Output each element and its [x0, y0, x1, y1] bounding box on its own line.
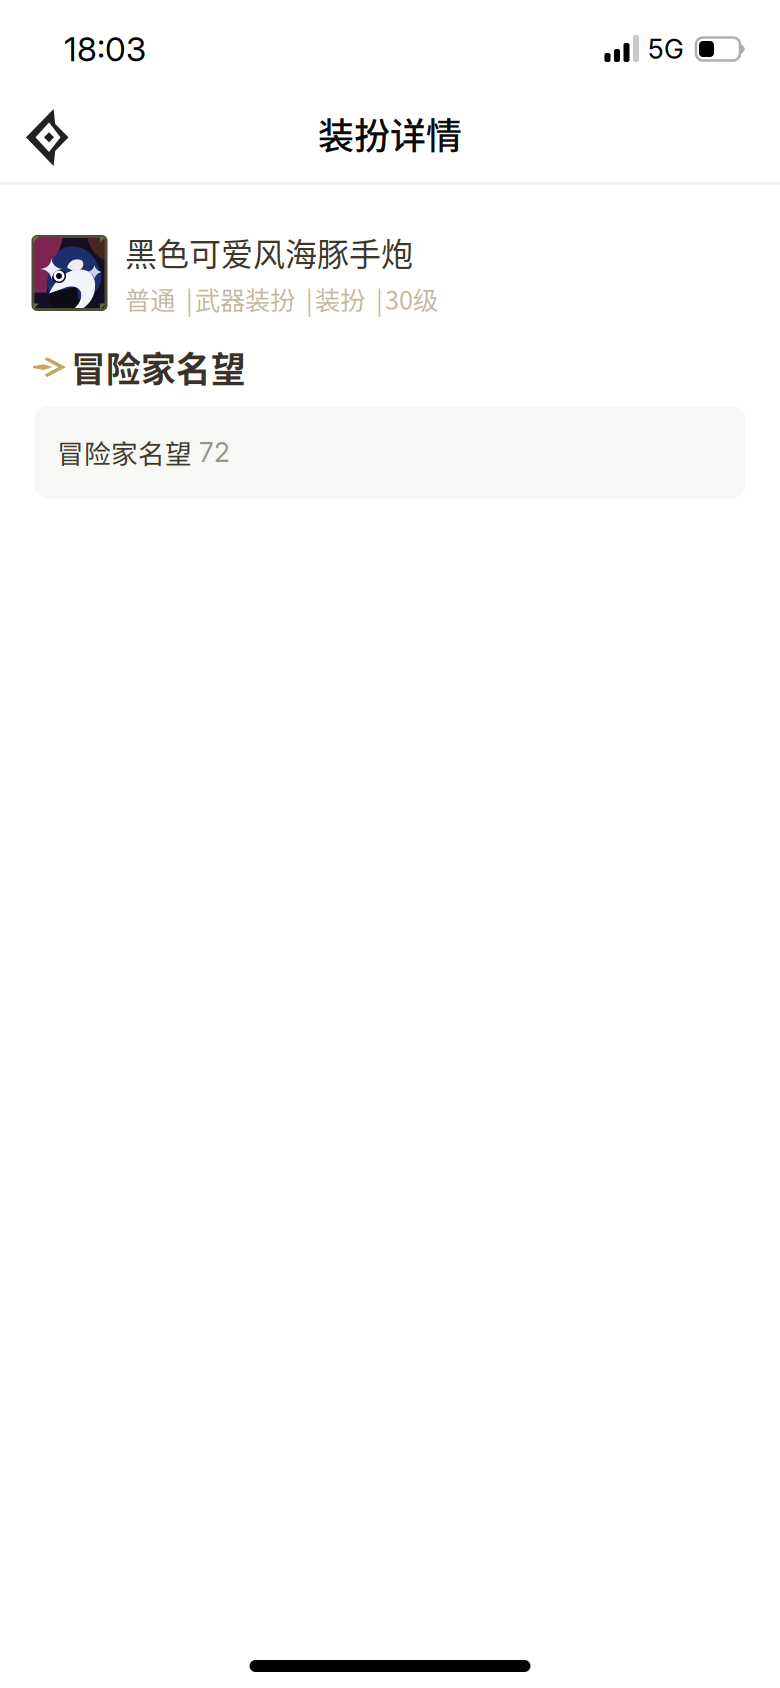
staticText: 18:03: [64, 29, 146, 69]
button[interactable]: Back: [0, 101, 91, 174]
staticText: 5G: [648, 33, 684, 65]
staticText: 72: [192, 436, 230, 468]
staticText: 黑色可爱风海豚手炮: [125, 229, 413, 275]
button[interactable]: 黑色可爱风海豚手炮: [0, 229, 780, 317]
staticText: 冒险家名望: [57, 433, 192, 471]
staticText: 冒险家名望: [71, 342, 246, 392]
staticText: 装扮详情: [318, 107, 462, 159]
button[interactable]: 冒险家名望: [0, 406, 780, 498]
staticText: 普通 | 武器装扮 | 装扮 | 30级: [125, 280, 438, 317]
